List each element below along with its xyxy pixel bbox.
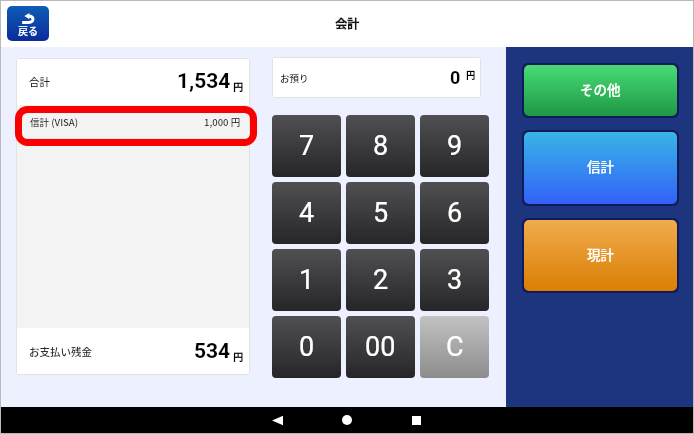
- button[interactable]: 9: [420, 115, 489, 177]
- button[interactable]: 0: [272, 316, 341, 378]
- button[interactable]: 8: [346, 115, 415, 177]
- button[interactable]: Home: [317, 407, 377, 433]
- button[interactable]: Back: [247, 407, 307, 433]
- button[interactable]: C: [420, 316, 489, 378]
- staticText: 現計: [587, 244, 614, 264]
- staticText: 信計 (VISA): [30, 115, 79, 129]
- button[interactable]: 戻る: [7, 6, 49, 41]
- staticText: 8: [373, 130, 389, 162]
- button[interactable]: 4: [272, 182, 341, 244]
- button[interactable]: 6: [420, 182, 489, 244]
- staticText: 0: [299, 331, 315, 363]
- staticText: 戻る: [18, 23, 38, 37]
- button[interactable]: 7: [272, 115, 341, 177]
- staticText: 4: [299, 197, 315, 229]
- staticText: 合計: [29, 74, 50, 89]
- button[interactable]: Recent apps: [386, 407, 446, 433]
- button[interactable]: 信計 (VISA): [17, 106, 249, 138]
- staticText: 信計: [587, 156, 614, 176]
- staticText: 0: [450, 67, 461, 88]
- button[interactable]: 現計: [524, 220, 677, 291]
- staticText: 9: [447, 130, 463, 162]
- staticText: 534: [194, 339, 231, 364]
- staticText: 6: [447, 197, 463, 229]
- staticText: 円: [233, 79, 243, 93]
- staticText: 1,000 円: [204, 115, 241, 129]
- staticText: 3: [447, 264, 463, 296]
- staticText: お支払い残金: [29, 344, 92, 359]
- button[interactable]: 3: [420, 249, 489, 311]
- button[interactable]: その他: [524, 65, 677, 116]
- button[interactable]: 00: [346, 316, 415, 378]
- staticText: 円: [233, 349, 243, 363]
- button[interactable]: 5: [346, 182, 415, 244]
- button[interactable]: 2: [346, 249, 415, 311]
- staticText: 会計: [335, 15, 360, 32]
- staticText: 1: [299, 264, 315, 296]
- staticText: 円: [466, 69, 476, 82]
- staticText: 2: [373, 264, 389, 296]
- staticText: お預り: [280, 71, 309, 85]
- button[interactable]: 1: [272, 249, 341, 311]
- staticText: 00: [365, 331, 396, 363]
- staticText: 5: [373, 197, 389, 229]
- staticText: 7: [299, 130, 315, 162]
- staticText: その他: [580, 79, 621, 99]
- staticText: C: [446, 331, 464, 363]
- button[interactable]: 信計: [524, 132, 677, 204]
- staticText: 1,534: [177, 69, 231, 94]
